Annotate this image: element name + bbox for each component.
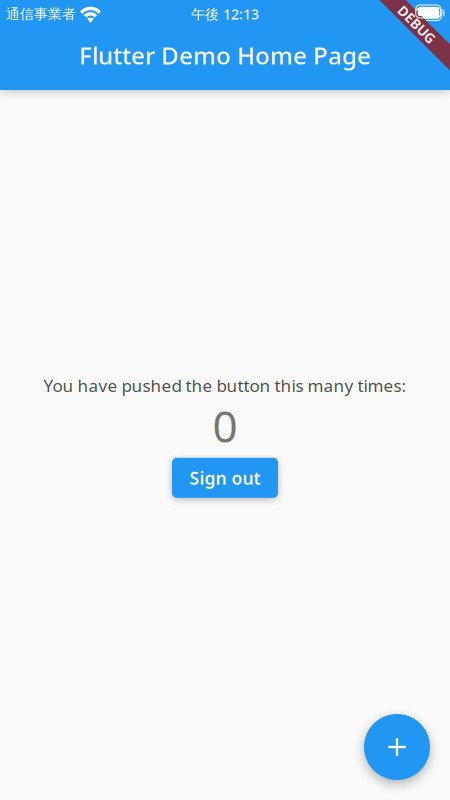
staticText: 午後 12:13 xyxy=(191,5,259,23)
staticText: Flutter Demo Home Page xyxy=(79,39,371,71)
staticText: 0 xyxy=(212,396,237,454)
staticText: 通信事業者 xyxy=(6,5,76,23)
staticText: You have pushed the button this many tim… xyxy=(43,374,406,397)
button[interactable]: Increment xyxy=(364,714,430,780)
staticText: Sign out xyxy=(189,466,260,489)
staticText: DEBUG xyxy=(391,21,438,39)
button[interactable]: Sign out xyxy=(172,458,278,498)
